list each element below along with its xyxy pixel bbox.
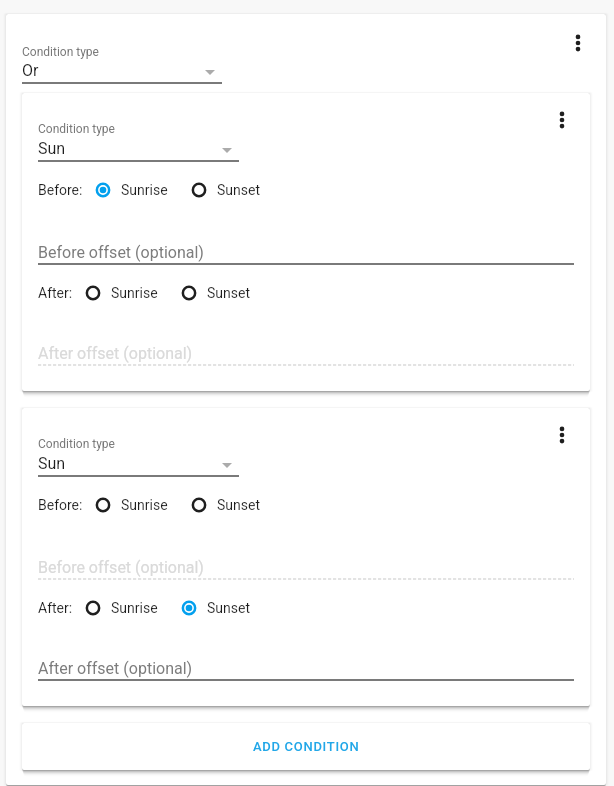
button[interactable]: After offset (optional) [38, 659, 574, 681]
staticText: Sun [38, 139, 66, 158]
button[interactable]: Condition type [22, 45, 222, 84]
button[interactable]: Sunrise [83, 598, 158, 618]
button[interactable]: Sunset [179, 283, 250, 303]
button[interactable]: Sunrise [93, 495, 168, 515]
staticText: Condition type [38, 437, 115, 451]
staticText: After offset (optional) [38, 659, 193, 678]
staticText: Sunset [207, 600, 250, 616]
staticText: Condition type [38, 122, 115, 136]
staticText: Or [22, 61, 39, 80]
button[interactable]: Sunset [189, 180, 260, 200]
button[interactable]: ADD CONDITION [22, 723, 590, 770]
staticText: Before offset (optional) [38, 558, 204, 577]
staticText: Before: [38, 182, 83, 198]
staticText: Sun [38, 454, 66, 473]
staticText: Before offset (optional) [38, 243, 204, 262]
staticText: Sunrise [111, 600, 158, 616]
staticText: ADD CONDITION [253, 739, 360, 754]
button[interactable]: After offset (optional) [38, 344, 574, 366]
staticText: After: [38, 285, 73, 301]
button[interactable]: Condition type [38, 437, 239, 477]
button[interactable]: More options [547, 420, 577, 450]
button[interactable]: Sunrise [93, 180, 168, 200]
button[interactable]: Before offset (optional) [38, 558, 574, 580]
button[interactable]: Condition type [38, 122, 239, 162]
button[interactable]: More options [563, 28, 593, 58]
staticText: Sunset [207, 285, 250, 301]
staticText: After offset (optional) [38, 344, 193, 363]
button[interactable]: Before offset (optional) [38, 243, 574, 265]
staticText: After: [38, 600, 73, 616]
staticText: Sunrise [111, 285, 158, 301]
staticText: Sunrise [121, 497, 168, 513]
staticText: Condition type [22, 45, 99, 59]
button[interactable]: More options [547, 105, 577, 135]
staticText: Before: [38, 497, 83, 513]
button[interactable]: Sunset [189, 495, 260, 515]
staticText: Sunset [217, 182, 260, 198]
button[interactable]: Sunrise [83, 283, 158, 303]
staticText: Sunset [217, 497, 260, 513]
staticText: Sunrise [121, 182, 168, 198]
button[interactable]: Sunset [179, 598, 250, 618]
